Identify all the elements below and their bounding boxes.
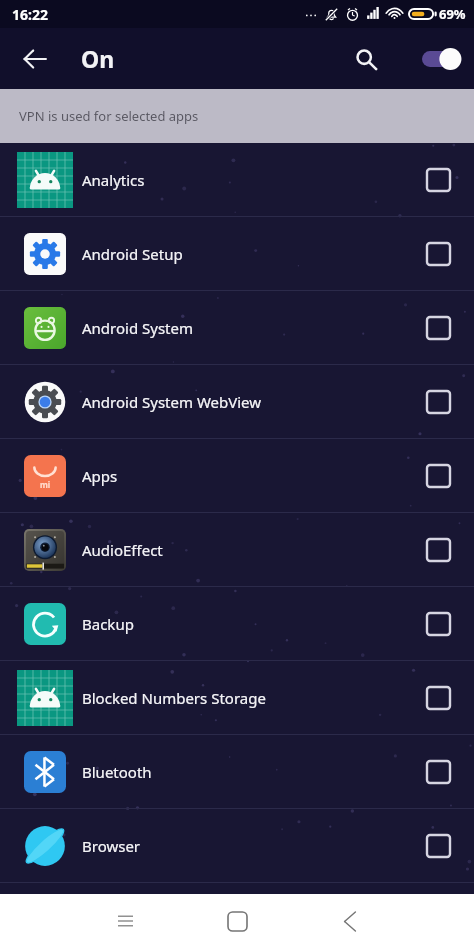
button[interactable]: mi [0,439,474,513]
staticText: Blocked Numbers Storage [82,688,266,708]
button[interactable]: Analytics [0,143,474,217]
staticText: mi [40,479,51,490]
staticText: Bluetooth [82,762,152,782]
staticText: Analytics [82,170,145,190]
button[interactable]: Bluetooth [0,735,474,809]
staticText: 69% [439,5,466,23]
button[interactable]: Android Setup [0,217,474,291]
button[interactable]: Back [11,35,59,83]
staticText: Android Setup [82,244,183,264]
button[interactable]: Recent apps [95,894,155,948]
button[interactable]: Backup [0,587,474,661]
staticText: On [81,43,115,74]
button[interactable]: Android System WebView [0,365,474,439]
button[interactable]: Home [207,894,267,948]
button[interactable]: Browser [0,809,474,883]
staticText: VPN is used for selected apps [19,107,199,125]
staticText: Browser [82,836,141,856]
staticText: Backup [82,614,134,634]
staticText: Apps [82,466,118,486]
staticText: Android System [82,318,194,338]
staticText: 16:22 [12,5,48,24]
button[interactable]: VPN on/off toggle [418,35,466,83]
button[interactable]: AudioEffect [0,513,474,587]
button[interactable]: Back [320,894,380,948]
staticText: Android System WebView [82,392,262,412]
button[interactable]: Search [344,37,388,81]
button[interactable]: Android System [0,291,474,365]
staticText: AudioEffect [82,540,163,560]
button[interactable]: Blocked Numbers Storage [0,661,474,735]
